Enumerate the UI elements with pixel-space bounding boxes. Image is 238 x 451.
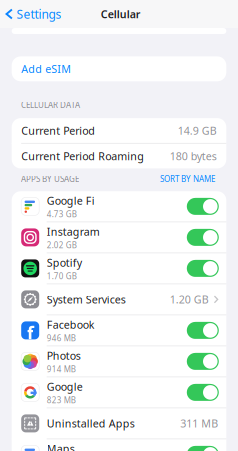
staticText: 2.02 GB bbox=[47, 240, 77, 250]
staticText: 180 bytes bbox=[170, 149, 217, 163]
staticText: Google bbox=[47, 379, 83, 394]
button[interactable]: Add eSIM bbox=[12, 56, 226, 81]
staticText: 311 MB bbox=[180, 416, 218, 430]
staticText: 4.73 GB bbox=[47, 209, 77, 219]
button[interactable]: Uninstalled Apps bbox=[12, 408, 226, 438]
staticText: Photos bbox=[47, 348, 81, 363]
button[interactable]: Current Period Roaming bbox=[12, 144, 226, 168]
staticText: 1.70 GB bbox=[47, 271, 77, 281]
button[interactable]: Google bbox=[12, 377, 226, 407]
staticText: Cellular bbox=[101, 7, 141, 21]
button[interactable]: Settings bbox=[0, 0, 67, 28]
staticText: Current Period Roaming bbox=[21, 149, 144, 163]
button[interactable]: System Services bbox=[12, 284, 226, 314]
staticText: 946 MB bbox=[47, 333, 76, 343]
staticText: 823 MB bbox=[47, 395, 76, 405]
button[interactable]: Current Period bbox=[12, 118, 226, 143]
button[interactable]: Maps bbox=[12, 439, 226, 451]
staticText: Instagram bbox=[47, 224, 100, 239]
button[interactable]: Google Fi bbox=[12, 191, 226, 221]
button[interactable]: Spotify bbox=[12, 253, 226, 283]
staticText: 914 MB bbox=[47, 364, 76, 374]
staticText: Google Fi bbox=[47, 193, 95, 208]
staticText: Uninstalled Apps bbox=[47, 416, 135, 430]
button[interactable]: Photos bbox=[12, 346, 226, 376]
staticText: Current Period bbox=[21, 123, 95, 138]
staticText: Spotify bbox=[47, 255, 82, 270]
staticText: 14.9 GB bbox=[178, 123, 217, 138]
staticText: APPS BY USAGE bbox=[21, 174, 79, 184]
staticText: Settings bbox=[16, 6, 61, 22]
staticText: Add eSIM bbox=[21, 62, 71, 76]
staticText: System Services bbox=[47, 292, 126, 306]
staticText: 1.20 GB bbox=[170, 292, 209, 306]
staticText: CELLULAR DATA bbox=[21, 99, 80, 110]
button[interactable]: Instagram bbox=[12, 222, 226, 252]
staticText: Facebook bbox=[47, 317, 95, 332]
button[interactable]: Facebook bbox=[12, 315, 226, 345]
staticText: SORT BY NAME bbox=[160, 174, 215, 184]
button[interactable]: SORT BY NAME bbox=[160, 174, 215, 184]
staticText: Maps bbox=[47, 441, 75, 451]
